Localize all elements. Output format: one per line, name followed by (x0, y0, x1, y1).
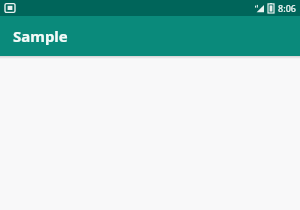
other: Notification (4, 2, 16, 14)
button[interactable]: Sample (0, 16, 300, 56)
staticText: Sample (13, 26, 68, 46)
staticText: 8:06 (278, 2, 296, 14)
